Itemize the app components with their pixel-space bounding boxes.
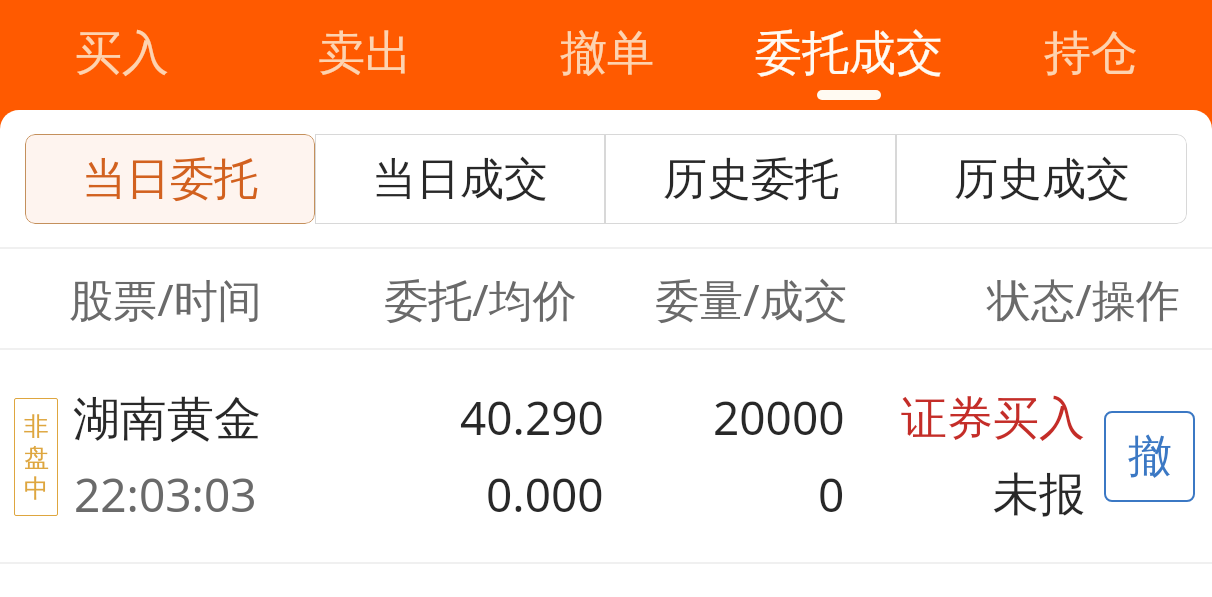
button[interactable]: 撤单 Cancel order	[1104, 411, 1195, 502]
button[interactable]: 买入	[0, 0, 243, 110]
staticText: 未报	[993, 466, 1085, 524]
staticText: 中	[24, 473, 49, 504]
staticText: 0.000	[486, 463, 604, 526]
staticText: 当日成交	[372, 152, 548, 207]
staticText: 40.290	[460, 386, 604, 449]
staticText: 撤单	[560, 24, 654, 83]
staticText: 当日委托	[82, 152, 258, 207]
staticText: 20000	[713, 386, 845, 449]
staticText: 历史委托	[663, 152, 839, 207]
staticText: 22:03:03	[74, 463, 257, 526]
button[interactable]: 历史委托	[605, 134, 896, 224]
button[interactable]: 当日委托	[25, 134, 315, 224]
button[interactable]: 委托成交	[728, 0, 970, 110]
button[interactable]: 非	[0, 350, 1212, 562]
button[interactable]: 当日成交	[315, 134, 605, 224]
staticText: 卖出	[318, 24, 412, 83]
staticText: 股票/时间	[69, 269, 262, 329]
staticText: 委量/成交	[655, 269, 848, 329]
staticText: 买入	[75, 24, 169, 83]
staticText: 湖南黄金	[73, 390, 261, 449]
staticText: 历史成交	[954, 152, 1130, 207]
staticText: 委托成交	[755, 24, 943, 83]
button[interactable]: 历史成交	[896, 134, 1187, 224]
staticText: 0	[818, 463, 845, 526]
staticText: 盘	[24, 442, 49, 473]
button[interactable]: 卖出	[243, 0, 486, 110]
staticText: 委托/均价	[384, 269, 577, 329]
button[interactable]: 撤单	[486, 0, 728, 110]
staticText: 证券买入	[901, 390, 1085, 448]
button[interactable]: 持仓	[970, 0, 1212, 110]
staticText: 状态/操作	[987, 269, 1180, 329]
staticText: 持仓	[1044, 24, 1138, 83]
staticText: 撤	[1128, 429, 1172, 484]
staticText: 非	[24, 411, 49, 442]
